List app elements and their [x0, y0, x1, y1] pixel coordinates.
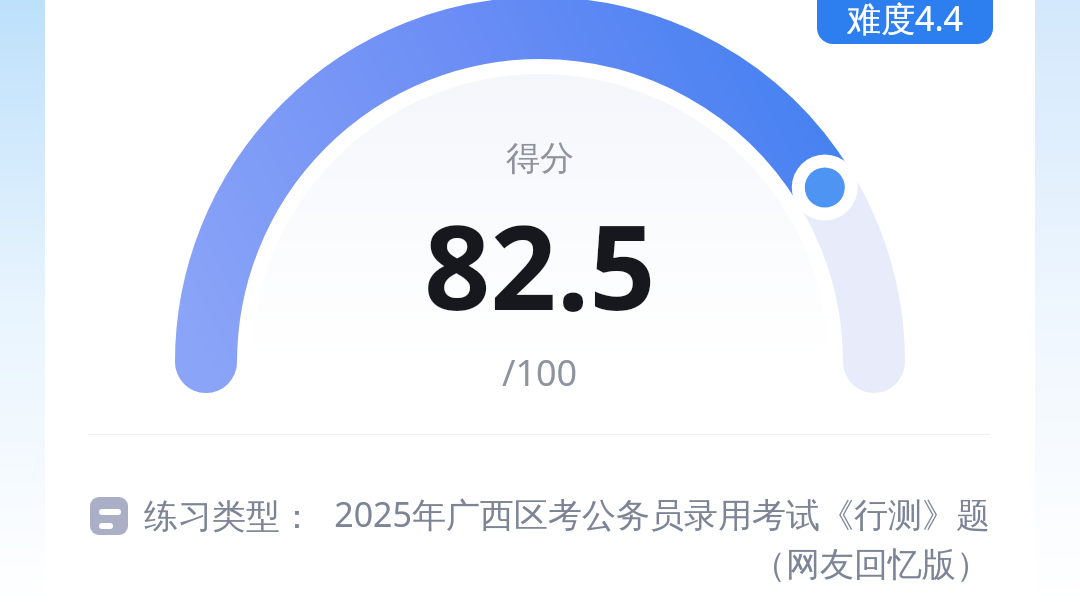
staticText: 得分 — [506, 137, 574, 180]
staticText: 练习类型： — [144, 495, 314, 538]
staticText: 82.5 — [424, 186, 656, 344]
button[interactable]: 练习类型 — [90, 491, 990, 586]
button[interactable]: 难度4.4 — [817, 0, 993, 44]
staticText: 2025年广西区考公务员录用考试《行测》题（网友回忆版） — [314, 491, 990, 586]
other: 练习类型 — [90, 497, 128, 535]
staticText: /100 — [502, 348, 578, 397]
staticText: 难度4.4 — [847, 0, 964, 41]
